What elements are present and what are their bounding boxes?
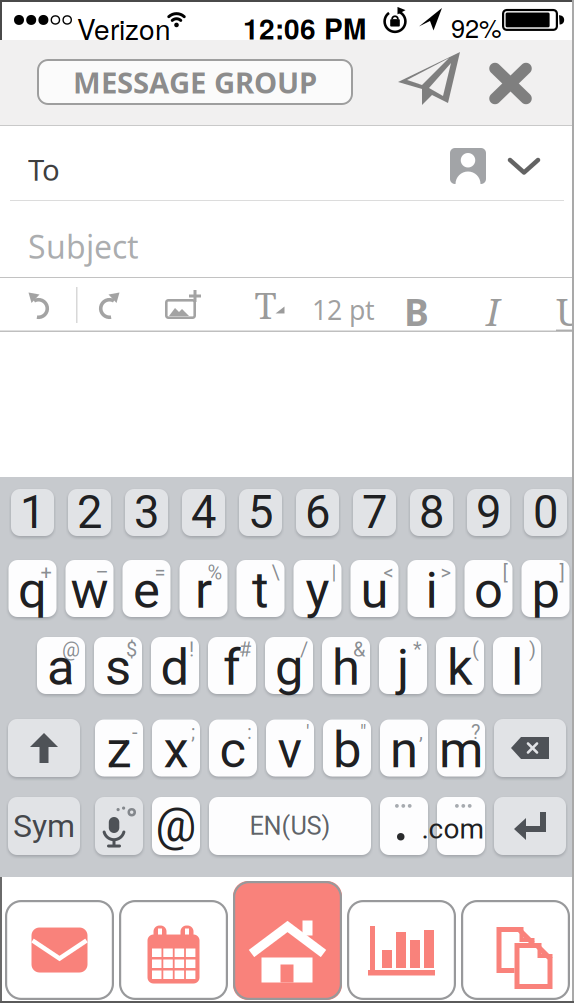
staticText: MESSAGE GROUP <box>73 62 317 101</box>
staticText: p <box>531 561 559 620</box>
button[interactable]: Documents <box>461 900 570 1000</box>
button[interactable]: [ <box>464 560 512 617</box>
staticText: & <box>353 638 365 661</box>
staticText: – <box>95 561 108 584</box>
button[interactable]: 8 <box>410 489 453 536</box>
staticText: : <box>247 720 252 744</box>
button[interactable]: ? <box>437 719 485 776</box>
button[interactable]: - <box>95 719 143 776</box>
staticText: l <box>511 638 523 697</box>
staticText: e <box>133 561 160 620</box>
button[interactable]: 0 <box>524 489 567 536</box>
staticText: I <box>486 286 500 337</box>
button[interactable]: Shift <box>8 719 80 777</box>
button[interactable]: Send <box>396 50 462 106</box>
button[interactable]: 9 <box>467 489 510 536</box>
button[interactable]: Voice input <box>95 797 143 855</box>
button[interactable]: = <box>122 560 170 617</box>
staticText: r <box>195 561 212 620</box>
staticText: < <box>383 561 393 584</box>
button[interactable]: ! <box>151 637 199 694</box>
button[interactable]: MESSAGE GROUP <box>37 59 353 105</box>
button[interactable]: Underline <box>556 286 574 337</box>
button[interactable]: 5 <box>239 489 282 536</box>
staticText: @ <box>62 638 80 661</box>
staticText: d <box>160 638 189 697</box>
button[interactable]: \ <box>236 560 284 617</box>
button[interactable]: Calendar <box>119 900 228 1000</box>
staticText: m <box>439 720 483 780</box>
button[interactable]: ) <box>493 637 541 694</box>
staticText: q <box>18 561 47 620</box>
button[interactable]: Return <box>494 797 566 855</box>
staticText: 9 <box>476 486 501 539</box>
staticText: u <box>360 561 388 620</box>
staticText: = <box>154 561 165 584</box>
button[interactable]: 3 <box>125 489 168 536</box>
button[interactable]: * <box>379 637 427 694</box>
staticText: c <box>219 720 246 780</box>
button[interactable]: Expand <box>508 158 540 175</box>
staticText: To <box>28 150 60 189</box>
button[interactable]: Redo <box>100 292 121 318</box>
staticText: * <box>413 638 422 661</box>
button[interactable]: Insert image <box>165 291 201 319</box>
button[interactable]: : <box>209 719 257 776</box>
staticText: EN(US) <box>249 811 330 841</box>
button[interactable]: + <box>8 560 56 617</box>
button[interactable]: Sym <box>8 797 80 855</box>
button[interactable]: – <box>65 560 113 617</box>
button[interactable]: ' <box>266 719 314 776</box>
button[interactable]: 4 <box>182 489 225 536</box>
button[interactable]: Choose contact <box>450 148 486 184</box>
button[interactable]: EN(US) <box>209 797 371 855</box>
button[interactable]: Undo <box>27 292 48 318</box>
button[interactable]: Delete <box>494 719 566 777</box>
button[interactable]: Statistics <box>347 900 456 1000</box>
button[interactable]: Close <box>489 63 532 104</box>
button[interactable]: 2 <box>68 489 111 536</box>
button[interactable]: Period <box>380 797 428 855</box>
button[interactable]: Text size <box>250 287 281 323</box>
button[interactable]: Home <box>233 881 342 1000</box>
staticText: [ <box>502 561 507 584</box>
button[interactable]: .com <box>437 797 485 855</box>
staticText: Verizon <box>77 8 171 48</box>
button[interactable]: 7 <box>353 489 396 536</box>
button[interactable]: / <box>265 637 313 694</box>
button[interactable]: , <box>380 719 428 776</box>
button[interactable]: @ <box>152 797 200 855</box>
button[interactable]: ] <box>521 560 569 617</box>
staticText: ( <box>472 638 479 661</box>
button[interactable]: ( <box>436 637 484 694</box>
button[interactable]: 1 <box>11 489 54 536</box>
staticText: 7 <box>362 486 387 539</box>
button[interactable]: 12 pt <box>312 292 375 327</box>
staticText: ) <box>529 638 536 661</box>
button[interactable]: Mail <box>5 900 114 1000</box>
staticText: k <box>447 638 473 697</box>
staticText: b <box>333 720 361 780</box>
button[interactable]: 6 <box>296 489 339 536</box>
button[interactable]: # <box>208 637 256 694</box>
button[interactable]: | <box>293 560 341 617</box>
button[interactable]: @ <box>37 637 85 694</box>
button[interactable]: $ <box>94 637 142 694</box>
staticText: s <box>105 638 131 697</box>
button[interactable]: % <box>179 560 227 617</box>
staticText: Sym <box>13 807 75 845</box>
button[interactable]: " <box>323 719 371 776</box>
button[interactable]: Italic <box>486 286 500 337</box>
button[interactable]: > <box>407 560 455 617</box>
staticText: .com <box>421 813 484 845</box>
staticText: 3 <box>134 486 159 539</box>
staticText: ; <box>191 720 195 744</box>
button[interactable]: Bold <box>404 286 429 337</box>
staticText: w <box>70 561 108 620</box>
staticText: T <box>254 280 276 329</box>
button[interactable]: & <box>322 637 370 694</box>
staticText: 0 <box>533 486 558 539</box>
staticText: t <box>252 561 269 620</box>
button[interactable]: ; <box>152 719 200 776</box>
button[interactable]: < <box>350 560 398 617</box>
